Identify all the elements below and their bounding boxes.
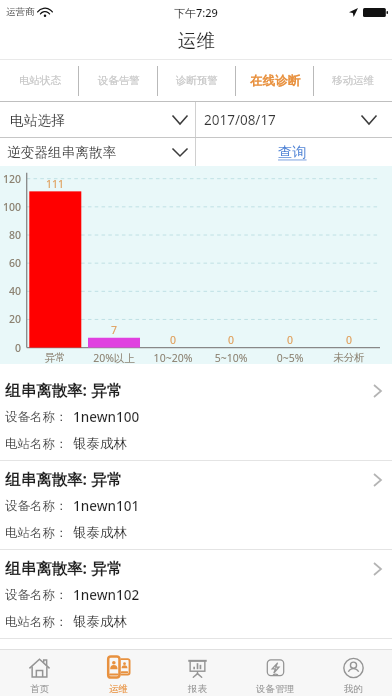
staticText: 电站名称： [5, 436, 68, 452]
staticText: 120 [0, 172, 21, 186]
staticText: 银泰成林 [73, 613, 127, 630]
button[interactable]: 运维 [79, 650, 158, 696]
staticText: 0 [143, 333, 203, 347]
staticText: 组串离散率: 异常 [5, 379, 122, 400]
staticText: 组串离散率: 异常 [5, 557, 122, 578]
staticText: 0 [260, 333, 320, 347]
staticText: 0 [0, 341, 21, 355]
staticText: 0 [319, 333, 379, 347]
staticText: 100 [0, 200, 21, 214]
button[interactable]: 在线诊断 [236, 60, 314, 101]
staticText: 在线诊断 [250, 73, 300, 89]
staticText: 40 [0, 284, 21, 298]
staticText: 20%以上 [82, 351, 146, 365]
staticText: 7 [84, 323, 144, 337]
button[interactable]: 组串离散率: 异常 [0, 372, 392, 461]
button[interactable]: 电站状态 [0, 60, 79, 101]
staticText: 设备告警 [98, 74, 140, 87]
staticText: 逆变器组串离散率 [7, 144, 117, 161]
button[interactable]: 设备告警 [79, 60, 158, 101]
staticText: 运维 [109, 683, 128, 695]
staticText: 5~10% [199, 351, 263, 365]
staticText: 组串离散率: 异常 [5, 468, 122, 489]
staticText: 运维 [178, 29, 215, 52]
staticText: 1newn102 [73, 586, 140, 604]
staticText: 60 [0, 256, 21, 270]
staticText: 2017/08/17 [204, 111, 276, 129]
button[interactable]: 组串离散率: 异常 [0, 461, 392, 550]
staticText: 111 [25, 177, 85, 191]
staticText: 1newn101 [73, 497, 140, 515]
staticText: 查询 [278, 143, 307, 161]
staticText: 0 [201, 333, 261, 347]
button[interactable]: 移动运维 [314, 60, 392, 101]
button[interactable]: 组串离散率: 异常 [0, 550, 392, 639]
button[interactable]: 我的 [314, 650, 392, 696]
button[interactable]: 查询 [196, 138, 392, 166]
staticText: 首页 [30, 683, 49, 695]
staticText: 运营商 [6, 6, 35, 18]
staticText: 10~20% [141, 351, 205, 365]
staticText: 未分析 [317, 351, 381, 364]
staticText: 银泰成林 [73, 524, 127, 541]
button[interactable]: 逆变器组串离散率 [0, 138, 195, 166]
staticText: 80 [0, 228, 21, 242]
staticText: 设备名称： [5, 498, 68, 514]
staticText: 移动运维 [332, 74, 374, 87]
staticText: 20 [0, 312, 21, 326]
button[interactable]: 2017/08/17 [196, 102, 392, 138]
staticText: 电站名称： [5, 614, 68, 630]
staticText: 0~5% [258, 351, 322, 365]
staticText: 我的 [344, 683, 363, 695]
staticText: 1newn100 [73, 408, 140, 426]
staticText: 下午7:29 [174, 5, 218, 20]
staticText: 电站状态 [19, 74, 61, 87]
staticText: 诊断预警 [176, 74, 218, 87]
button[interactable]: 设备管理 [236, 650, 314, 696]
button[interactable]: 报表 [158, 650, 236, 696]
staticText: 银泰成林 [73, 435, 127, 452]
button[interactable]: 首页 [0, 650, 79, 696]
button[interactable]: 电站选择 [0, 102, 195, 138]
staticText: 异常 [23, 351, 87, 364]
staticText: 设备名称： [5, 587, 68, 603]
staticText: 设备管理 [256, 683, 294, 695]
button[interactable]: 诊断预警 [158, 60, 236, 101]
staticText: 电站名称： [5, 525, 68, 541]
staticText: 设备名称： [5, 409, 68, 425]
staticText: 电站选择 [10, 112, 65, 129]
staticText: 报表 [188, 683, 207, 695]
